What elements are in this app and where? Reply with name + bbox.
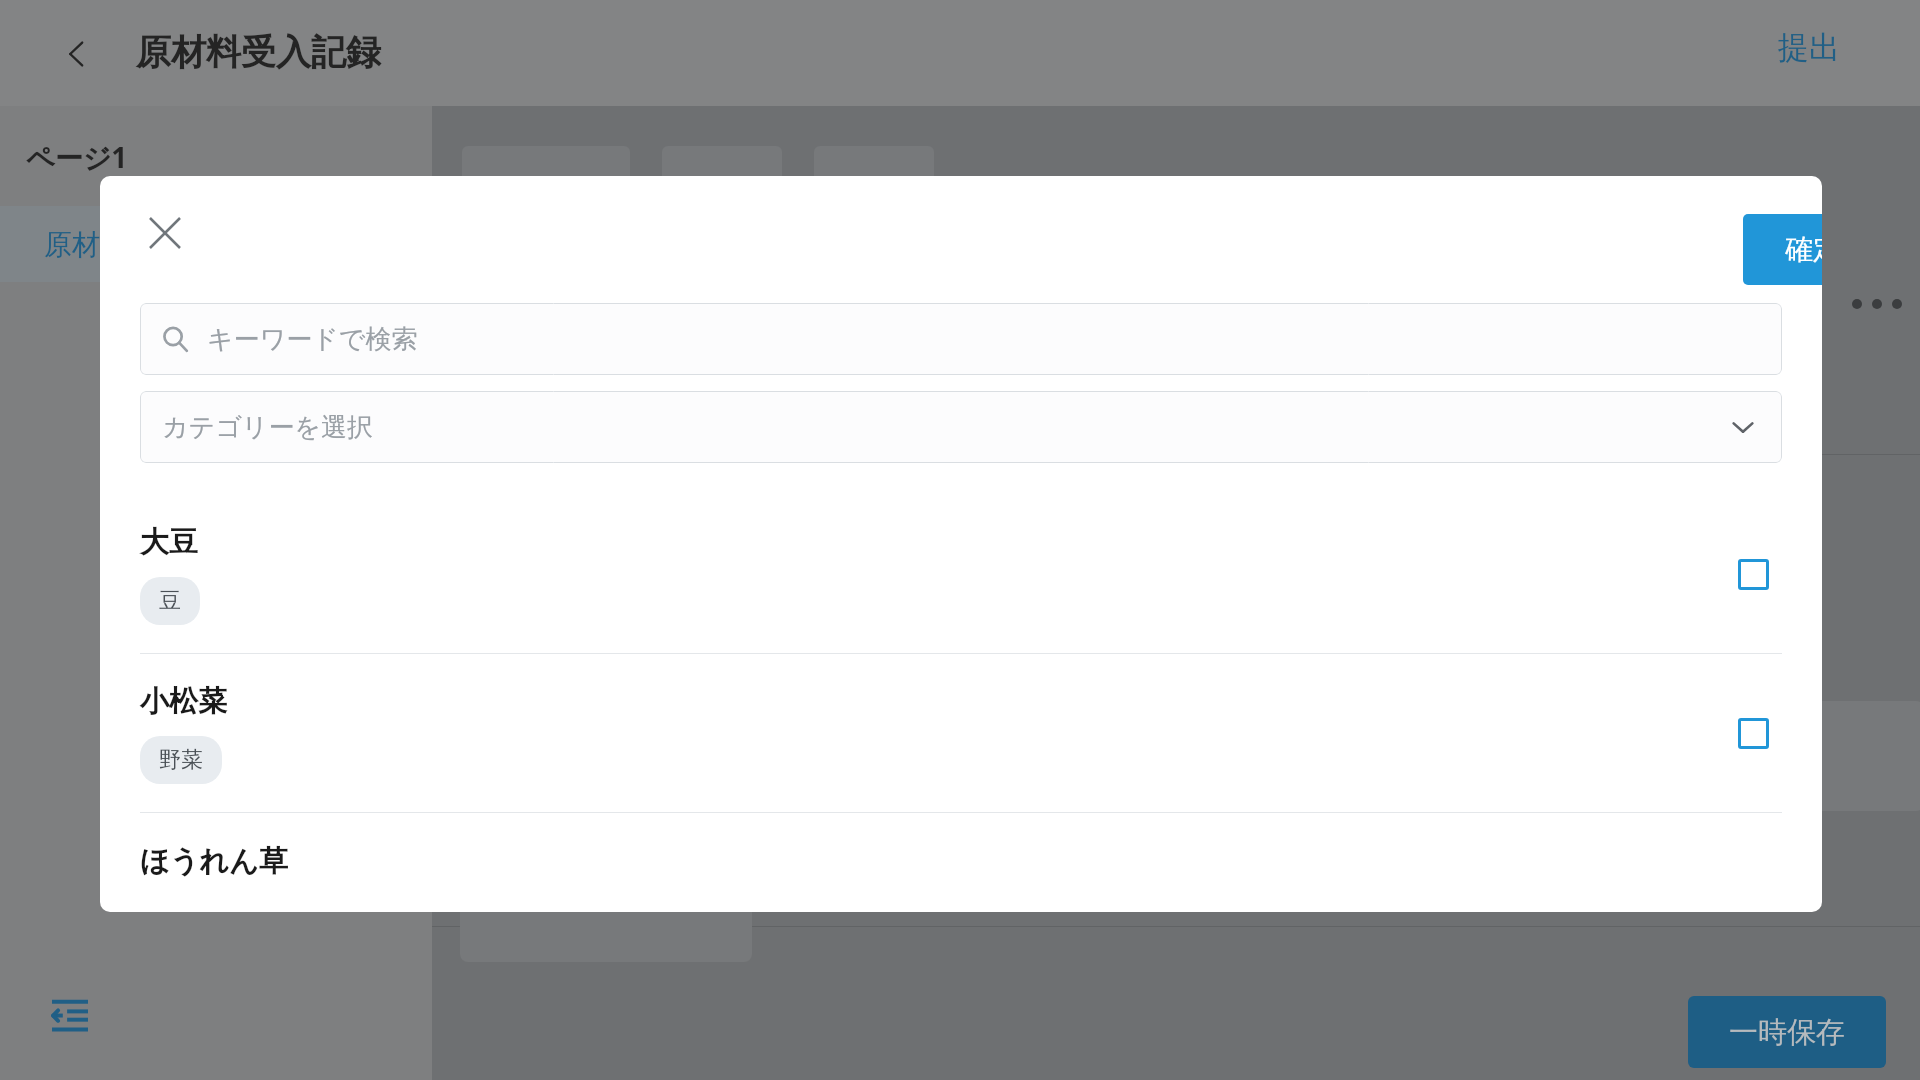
button[interactable]: カテゴリーを選択 <box>140 391 1782 463</box>
staticText: 原材料受入記録 <box>44 227 240 262</box>
staticText: カテゴリーを選択 <box>162 411 374 444</box>
button[interactable]: 小松菜 <box>100 654 1822 812</box>
button[interactable] <box>462 146 630 206</box>
button[interactable]: 原材料受入記録 <box>0 206 432 282</box>
button[interactable] <box>662 146 782 206</box>
staticText: 一時保存 <box>1729 1014 1845 1051</box>
staticText: ページ1 <box>26 138 128 176</box>
staticText: 小松菜 <box>140 683 227 720</box>
button[interactable]: 提出 <box>1772 22 1846 73</box>
button[interactable]: 一時保存 <box>1688 996 1886 1068</box>
button[interactable]: メニュー <box>1852 284 1912 324</box>
staticText: 原材料受入記録 <box>136 30 381 74</box>
staticText: 確定 <box>1785 232 1822 267</box>
button[interactable]: 確定 <box>1743 214 1822 285</box>
button[interactable]: 閉じる <box>136 204 194 262</box>
staticText: 野菜 <box>159 746 203 774</box>
button[interactable]: 小松菜 を選択 <box>1724 704 1782 762</box>
button[interactable]: キーワードで検索 <box>140 303 1782 375</box>
button[interactable] <box>814 146 934 206</box>
staticText: キーワードで検索 <box>207 323 418 356</box>
staticText: 提出 <box>1778 28 1840 67</box>
button[interactable]: 戻る <box>50 27 104 81</box>
button[interactable]: サイドバー切替 <box>40 985 100 1045</box>
button[interactable]: 大豆 <box>100 495 1822 653</box>
staticText: 大豆 <box>140 524 198 561</box>
button[interactable]: 大豆 を選択 <box>1724 545 1782 603</box>
staticText: ほうれん草 <box>140 843 288 880</box>
staticText: 豆 <box>159 587 181 615</box>
